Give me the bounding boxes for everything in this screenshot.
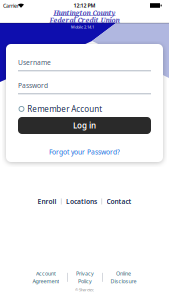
staticText: Privacy [76, 270, 94, 277]
staticText: Contact [107, 197, 132, 206]
button[interactable]: Contact [107, 197, 132, 206]
button[interactable]: Log in [18, 117, 151, 134]
button[interactable]: Username [18, 57, 151, 71]
staticText: Username [18, 58, 51, 67]
button[interactable]: Account [32, 270, 59, 285]
button[interactable]: Locations [66, 197, 97, 206]
staticText: Forgot your Password? [49, 147, 120, 156]
button[interactable]: Remember Account [19, 104, 102, 114]
staticText: Locations [66, 197, 97, 206]
button[interactable]: Enroll [37, 197, 56, 206]
button[interactable]: Online [111, 270, 137, 285]
staticText: Password [18, 81, 48, 90]
staticText: Account [36, 270, 56, 277]
button[interactable]: Password [18, 80, 151, 94]
staticText: © Sharetec [75, 287, 94, 292]
staticText: Policy [78, 278, 92, 285]
button[interactable]: Privacy [76, 270, 94, 285]
staticText: Carrier [3, 2, 19, 9]
staticText: Remember Account [27, 104, 102, 114]
button[interactable]: Forgot your Password? [49, 147, 120, 156]
staticText: Disclosure [111, 278, 137, 285]
staticText: Enroll [37, 197, 56, 206]
staticText: Agreement [32, 278, 59, 285]
staticText: Federal Credit Union [49, 16, 119, 25]
staticText: Log in [73, 120, 96, 131]
staticText: Huntington County [53, 8, 115, 17]
staticText: Mobile 2.14.1 [71, 24, 94, 29]
staticText: 12:12 PM [73, 2, 95, 9]
staticText: Online [116, 270, 131, 277]
